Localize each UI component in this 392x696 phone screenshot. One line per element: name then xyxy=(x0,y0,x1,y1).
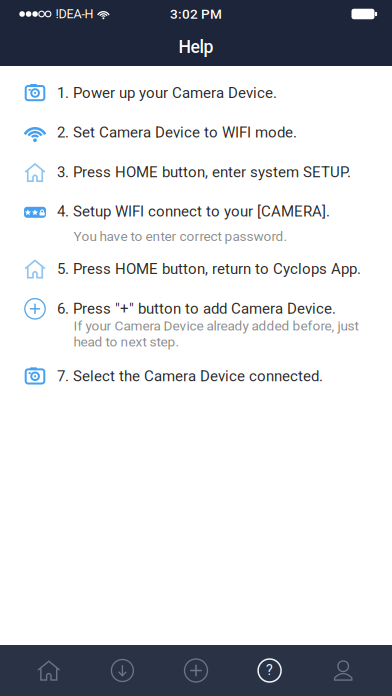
staticText: 6. Press "+" button to add Camera Device… xyxy=(57,300,336,317)
staticText: 2. Set Camera Device to WIFI mode. xyxy=(57,124,297,141)
button[interactable]: Home xyxy=(12,645,86,696)
staticText: 3. Press HOME button, enter system SETUP… xyxy=(57,163,351,181)
button[interactable]: 2. Set Camera Device to WIFI mode. xyxy=(0,66,392,86)
staticText: You have to enter correct password. xyxy=(73,228,287,244)
button[interactable]: Help xyxy=(233,645,306,696)
staticText: 4. Setup WIFI connect to your [CAMERA]. xyxy=(57,202,330,220)
button[interactable]: Add device xyxy=(159,645,233,696)
staticText: !DEA-H xyxy=(55,7,93,21)
button[interactable]: 7. Select the Camera Device connected. xyxy=(0,66,392,86)
staticText: Help xyxy=(178,37,213,57)
staticText: 1. Power up your Camera Device. xyxy=(57,84,277,102)
staticText: 5. Press HOME button, return to Cyclops … xyxy=(57,260,361,278)
button[interactable]: 3. Press HOME button, enter system SETUP… xyxy=(0,66,392,86)
button[interactable]: Profile xyxy=(306,645,380,696)
button[interactable]: 4. Setup WIFI connect to your [CAMERA]. xyxy=(0,66,392,86)
button[interactable]: 6. Press "+" button to add Camera Device… xyxy=(0,66,392,98)
button[interactable]: 1. Power up your Camera Device. xyxy=(0,66,392,86)
button[interactable]: Downloads xyxy=(86,645,159,696)
button[interactable]: 5. Press HOME button, return to Cyclops … xyxy=(0,66,392,86)
staticText: If your Camera Device already added befo… xyxy=(73,318,358,350)
staticText: 3:02 PM xyxy=(170,6,222,22)
staticText: 7. Select the Camera Device connected. xyxy=(57,367,323,385)
staticText: ? xyxy=(266,662,273,678)
